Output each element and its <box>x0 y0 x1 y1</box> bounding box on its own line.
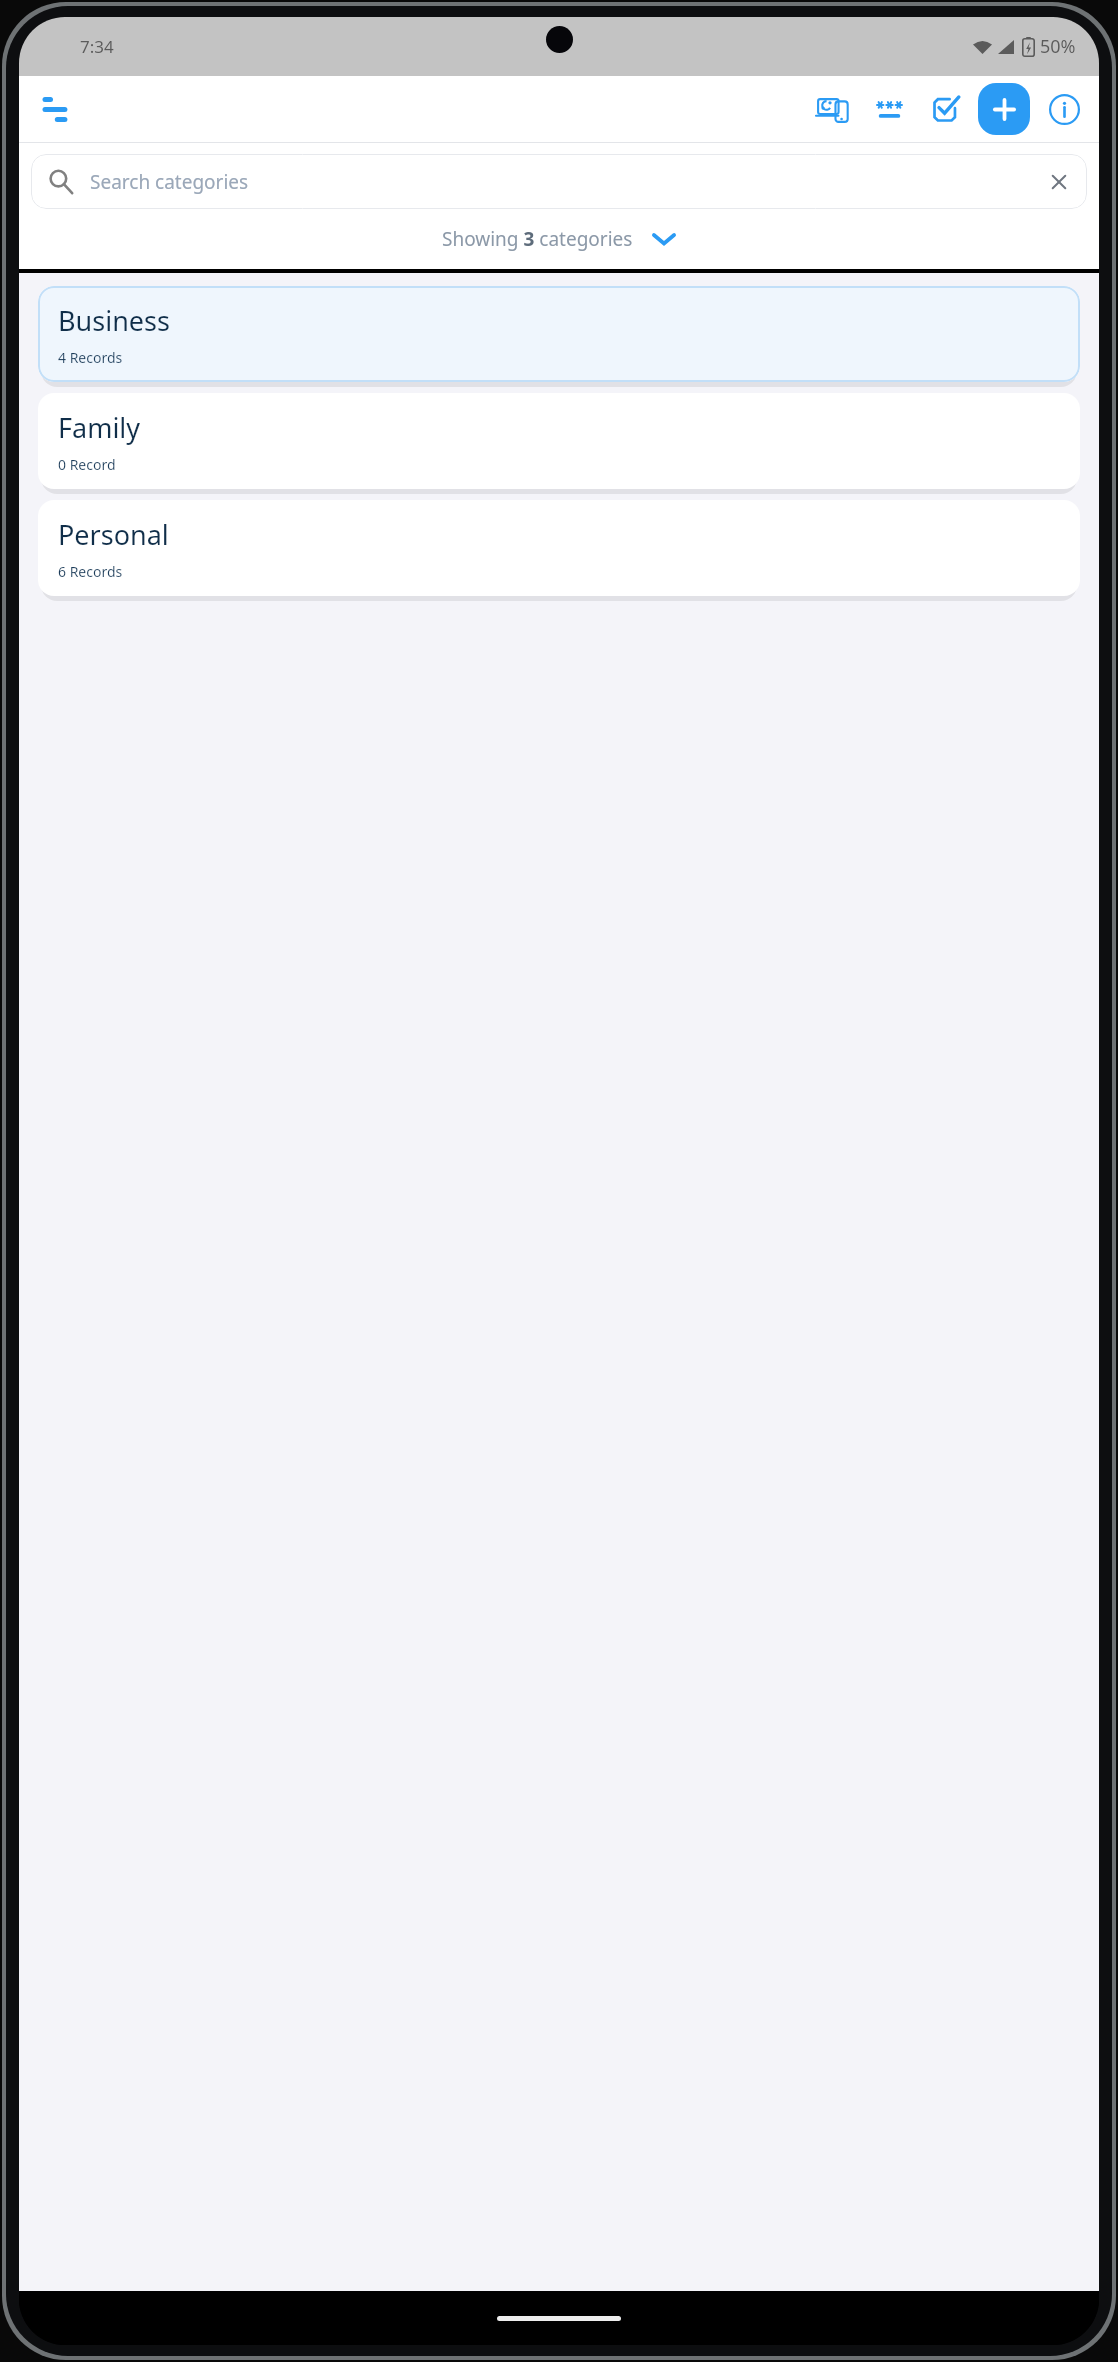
staticText: Family <box>58 409 141 446</box>
button[interactable]: Sync devices <box>809 86 855 132</box>
staticText: 0 Record <box>58 455 116 474</box>
button[interactable]: Clear search <box>1040 163 1078 201</box>
button[interactable]: Personal <box>38 500 1080 596</box>
button[interactable]: Family <box>38 393 1080 489</box>
staticText: Personal <box>58 516 169 553</box>
button[interactable]: Business <box>38 286 1080 382</box>
staticText: Business <box>58 302 170 339</box>
button[interactable]: Add <box>978 83 1030 135</box>
button[interactable]: Menu <box>32 85 80 133</box>
staticText: 6 Records <box>58 562 123 581</box>
staticText: 4 Records <box>58 348 123 367</box>
button[interactable]: Showing 3 categories <box>19 218 1099 260</box>
button[interactable]: Information <box>1041 86 1087 132</box>
staticText: 50% <box>1040 34 1076 59</box>
button[interactable]: Passwords <box>866 86 912 132</box>
button[interactable]: Search categories <box>31 154 1087 209</box>
staticText: Search categories <box>90 169 249 195</box>
button[interactable]: Checklist <box>923 86 969 132</box>
staticText: 7:34 <box>80 35 114 58</box>
staticText: Showing 3 categories <box>442 226 633 252</box>
